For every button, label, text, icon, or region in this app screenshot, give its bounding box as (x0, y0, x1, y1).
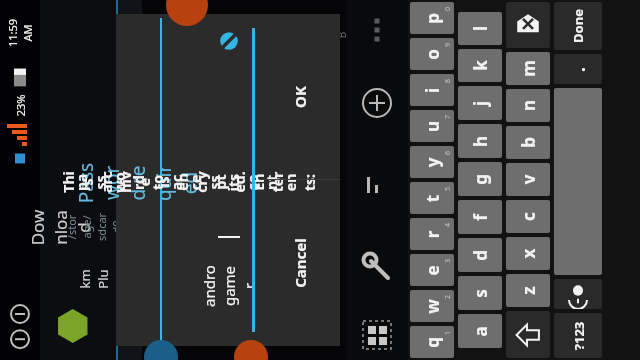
staticText: 2 (442, 294, 452, 299)
staticText: g (469, 174, 492, 185)
button[interactable]: More options (346, 0, 408, 60)
staticText: j (468, 100, 491, 106)
button[interactable]: i (410, 74, 454, 106)
staticText: u (420, 120, 443, 132)
staticText: 1 (442, 330, 452, 335)
staticText: password to access its contents: (71, 171, 318, 193)
button[interactable]: OK (259, 14, 340, 179)
button[interactable]: s (458, 276, 502, 310)
button[interactable]: Cancel (259, 180, 340, 346)
button[interactable]: Sort (346, 146, 408, 224)
staticText: i (420, 87, 443, 93)
button[interactable]: d (458, 238, 502, 272)
button[interactable]: z (506, 274, 550, 307)
button[interactable]: v (506, 163, 550, 196)
button[interactable]: j (458, 86, 502, 120)
staticText: 0 (442, 6, 452, 11)
button[interactable]: Delete (506, 2, 550, 48)
button[interactable]: p (410, 2, 454, 34)
staticText: w (421, 299, 444, 314)
staticText: Download (25, 207, 94, 247)
staticText: 6 (442, 150, 452, 155)
button[interactable]: Add (346, 60, 408, 146)
staticText: 9 (442, 42, 452, 47)
staticText: e (421, 265, 444, 276)
staticText: OK (290, 86, 310, 108)
staticText: 4 (442, 222, 452, 227)
staticText: Cancel (290, 238, 310, 288)
staticText: z (517, 286, 540, 295)
staticText: 5 (442, 186, 452, 191)
staticText: c (517, 212, 540, 221)
button[interactable]: w (410, 290, 454, 322)
button[interactable]: u (410, 110, 454, 142)
staticText: v (516, 174, 539, 184)
button[interactable]: Shift (506, 311, 550, 358)
button[interactable]: x (506, 237, 550, 270)
staticText: 426 B (321, 24, 349, 46)
staticText: x (516, 248, 539, 258)
staticText: p (421, 13, 444, 24)
button[interactable]: n (506, 89, 550, 122)
staticText: t (420, 194, 443, 202)
staticText: This archive is encrypted. Enter (59, 171, 287, 193)
staticText: /storage/sdcard0 (64, 213, 124, 241)
staticText: androgamer (199, 263, 259, 309)
button[interactable]: o (410, 38, 454, 70)
staticText: 8 (442, 78, 452, 83)
staticText: . (567, 67, 590, 72)
staticText: 11:59 AM (5, 13, 35, 53)
button[interactable]: l (458, 12, 502, 45)
button[interactable]: f (458, 200, 502, 234)
button[interactable]: c (506, 200, 550, 233)
staticText: b (517, 137, 540, 148)
staticText: f (469, 214, 492, 221)
staticText: k (469, 60, 492, 71)
button[interactable]: k (458, 49, 502, 82)
staticText: h (468, 135, 491, 147)
button[interactable]: Hide password (216, 28, 242, 54)
staticText: kmPlugins.zip.tmp (76, 267, 184, 291)
button[interactable]: Done (554, 2, 602, 50)
staticText: n (516, 99, 539, 111)
button[interactable]: a (458, 314, 502, 348)
staticText: m (517, 60, 540, 77)
staticText: 23% (12, 94, 27, 116)
button[interactable]: m (506, 52, 550, 85)
button[interactable]: q (410, 326, 454, 358)
staticText: q (421, 337, 444, 348)
staticText: y (420, 157, 443, 167)
staticText: 7 (442, 114, 452, 119)
button[interactable]: Tools (346, 224, 408, 310)
button[interactable]: h (458, 124, 502, 158)
staticText: a (469, 326, 492, 337)
button[interactable]: r (410, 218, 454, 250)
staticText: s (469, 289, 492, 298)
button[interactable]: ?123 (554, 313, 602, 358)
staticText: l (468, 25, 491, 31)
staticText: Done (569, 9, 587, 43)
button[interactable]: androgamer (206, 24, 252, 338)
staticText: r (420, 230, 443, 238)
button[interactable]: e (410, 254, 454, 286)
button[interactable]: . (554, 54, 602, 84)
staticText: ?123 (569, 321, 587, 350)
staticText: d (469, 250, 492, 261)
staticText: Password required (73, 161, 203, 205)
button[interactable]: b (506, 126, 550, 159)
staticText: o (421, 49, 444, 60)
button[interactable]: t (410, 182, 454, 214)
button[interactable]: g (458, 162, 502, 196)
button[interactable]: Grid view (346, 310, 408, 360)
button[interactable]: y (410, 146, 454, 178)
button[interactable]: Voice input (554, 279, 602, 309)
staticText: 3 (442, 258, 452, 263)
